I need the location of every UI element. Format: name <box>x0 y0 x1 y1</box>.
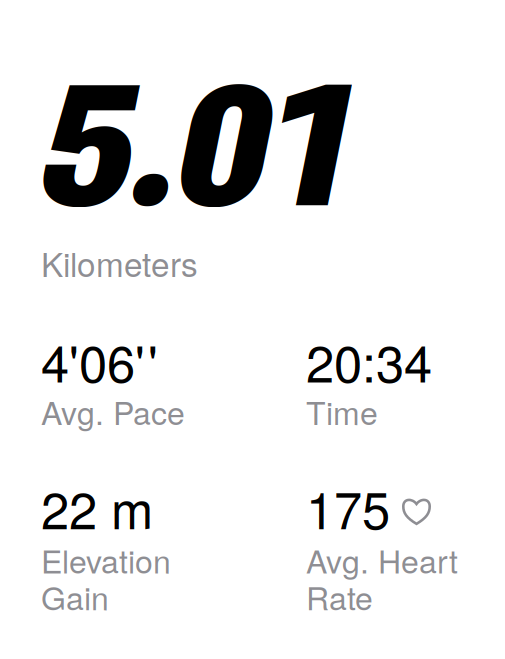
staticText: 22 m <box>41 478 153 536</box>
staticText: Avg. Heart Rate <box>306 541 458 615</box>
staticText: 4'06' ' <box>41 332 158 390</box>
staticText: 175 <box>306 478 390 536</box>
staticText: 5.01 <box>36 69 347 226</box>
staticText: Time <box>306 393 378 429</box>
staticText: 20:34 <box>306 332 432 390</box>
staticText: Avg. Pace <box>41 393 185 429</box>
staticText: Elevation Gain <box>41 541 171 615</box>
staticText: Kilometers <box>41 243 198 282</box>
